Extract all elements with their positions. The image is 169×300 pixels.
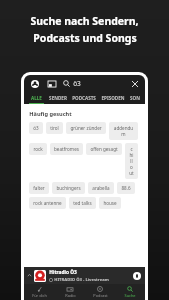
button[interactable]: Suche bbox=[115, 284, 145, 300]
button[interactable]: falter bbox=[29, 182, 49, 194]
staticText: grüner zünder bbox=[70, 125, 102, 131]
staticText: arabella bbox=[92, 185, 110, 191]
button[interactable]: Für dich bbox=[24, 284, 55, 300]
button[interactable]: Cast bbox=[46, 78, 57, 89]
button[interactable]: beatfromes bbox=[50, 143, 83, 155]
staticText: Podcasts und Songs bbox=[33, 31, 137, 45]
button[interactable]: EPISODEN bbox=[101, 92, 125, 104]
staticText: addendum bbox=[113, 125, 134, 137]
staticText: ted talks bbox=[73, 200, 92, 206]
staticText: Hitradio Ö3 bbox=[49, 269, 77, 276]
staticText: SON bbox=[130, 95, 140, 101]
button[interactable]: Wiedergabe bbox=[132, 271, 142, 281]
staticText: offen gesagt bbox=[90, 146, 118, 152]
staticText: EPISODEN bbox=[101, 95, 125, 101]
button[interactable]: arabella bbox=[88, 182, 114, 194]
button[interactable]: Hitradio Ö3 bbox=[24, 267, 145, 284]
staticText: falter bbox=[33, 185, 45, 191]
staticText: beatfromes bbox=[54, 146, 79, 152]
button[interactable]: ted talks bbox=[69, 197, 96, 209]
button[interactable]: buchingers bbox=[52, 182, 85, 194]
staticText: ö3 bbox=[73, 79, 81, 88]
button[interactable]: offen gesagt bbox=[86, 143, 122, 155]
staticText: Podcast bbox=[93, 293, 108, 298]
button[interactable]: rock antenne bbox=[29, 197, 66, 209]
button[interactable]: 88.6 bbox=[117, 182, 135, 194]
button[interactable]: rock bbox=[29, 143, 47, 155]
staticText: Für dich bbox=[32, 293, 47, 298]
staticText: 88.6 bbox=[121, 185, 131, 191]
staticText: Suche bbox=[124, 293, 136, 298]
staticText: buchingers bbox=[56, 185, 81, 191]
staticText: SENDER bbox=[49, 95, 67, 101]
button[interactable]: chillout bbox=[125, 143, 138, 179]
staticText: ö3 bbox=[33, 125, 39, 131]
staticText: chillout bbox=[129, 146, 134, 176]
button[interactable]: ALLE bbox=[29, 92, 44, 104]
button[interactable]: PODCASTS bbox=[72, 92, 96, 104]
button[interactable]: grüner zünder bbox=[66, 122, 106, 134]
button[interactable]: ö3 bbox=[29, 122, 43, 134]
staticText: Häufig gesucht bbox=[29, 110, 72, 118]
staticText: HITRADIO Ö3 - Livestream bbox=[54, 277, 109, 283]
staticText: Suche nach Sendern, bbox=[30, 14, 139, 28]
staticText: ALLE bbox=[31, 95, 42, 101]
staticText: PODCASTS bbox=[72, 95, 96, 101]
button[interactable]: addendum bbox=[109, 122, 138, 140]
staticText: house bbox=[103, 200, 117, 206]
button[interactable]: Podcast bbox=[85, 284, 115, 300]
button[interactable]: Radio bbox=[55, 284, 85, 300]
button[interactable]: SON bbox=[130, 92, 140, 104]
button[interactable]: SENDER bbox=[49, 92, 67, 104]
staticText: rock bbox=[33, 146, 43, 152]
button[interactable]: house bbox=[99, 197, 121, 209]
button[interactable]: tirol bbox=[46, 122, 63, 134]
button[interactable]: ö3 bbox=[63, 75, 129, 92]
staticText: Radio bbox=[65, 293, 76, 298]
staticText: rock antenne bbox=[33, 200, 62, 206]
button[interactable]: Schließen bbox=[129, 78, 140, 89]
staticText: tirol bbox=[50, 125, 59, 131]
button[interactable]: Profil bbox=[29, 78, 40, 89]
